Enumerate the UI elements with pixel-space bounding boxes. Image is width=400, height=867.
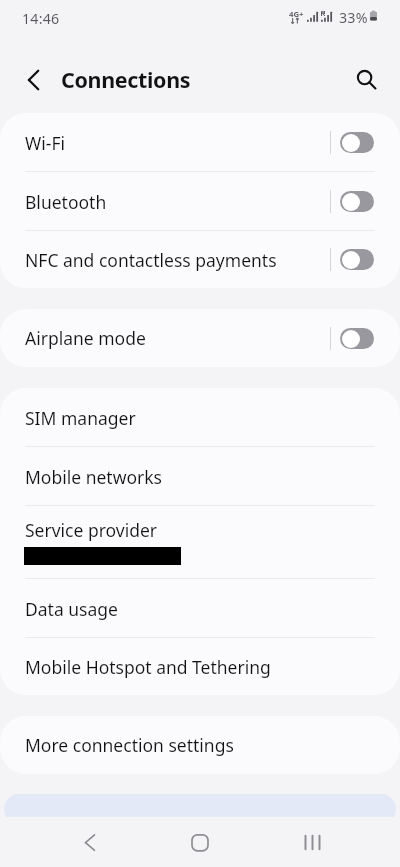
button[interactable]: Toggle off bbox=[340, 249, 374, 270]
button[interactable]: Airplane mode bbox=[0, 309, 400, 367]
staticText: Mobile Hotspot and Tethering bbox=[25, 655, 271, 679]
staticText: 4G+ bbox=[289, 9, 304, 20]
staticText: 33% bbox=[339, 8, 368, 27]
staticText: More connection settings bbox=[25, 733, 234, 757]
button[interactable] bbox=[4, 794, 396, 824]
button[interactable]: Toggle off bbox=[340, 132, 374, 153]
staticText: Wi-Fi bbox=[25, 131, 66, 155]
button[interactable]: Home bbox=[170, 817, 230, 867]
staticText: 14:46 bbox=[22, 9, 60, 28]
staticText: SIM manager bbox=[25, 406, 136, 430]
button[interactable]: NFC and contactless payments bbox=[0, 231, 400, 288]
staticText: Airplane mode bbox=[25, 326, 146, 350]
staticText: Bluetooth bbox=[25, 190, 107, 214]
staticText: NFC and contactless payments bbox=[25, 248, 277, 272]
button[interactable]: Bluetooth bbox=[0, 172, 400, 231]
button[interactable]: Wi-Fi bbox=[0, 113, 400, 172]
button[interactable]: More connection settings bbox=[0, 716, 400, 774]
button[interactable]: Data usage bbox=[0, 579, 400, 638]
button[interactable]: Back bbox=[59, 817, 119, 867]
button[interactable]: Service provider bbox=[0, 506, 400, 579]
staticText: Mobile networks bbox=[25, 465, 162, 489]
button[interactable]: SIM manager bbox=[0, 388, 400, 447]
staticText: Connections bbox=[61, 65, 191, 94]
staticText: Service provider bbox=[25, 518, 158, 542]
staticText: Data usage bbox=[25, 597, 118, 621]
button[interactable]: Mobile networks bbox=[0, 447, 400, 506]
button[interactable]: Toggle off bbox=[340, 328, 374, 349]
button[interactable]: Toggle off bbox=[340, 191, 374, 212]
button[interactable]: Search bbox=[347, 60, 384, 97]
button[interactable]: Navigate up bbox=[15, 61, 52, 98]
button[interactable]: Recent apps bbox=[282, 817, 342, 867]
button[interactable]: Mobile Hotspot and Tethering bbox=[0, 638, 400, 695]
